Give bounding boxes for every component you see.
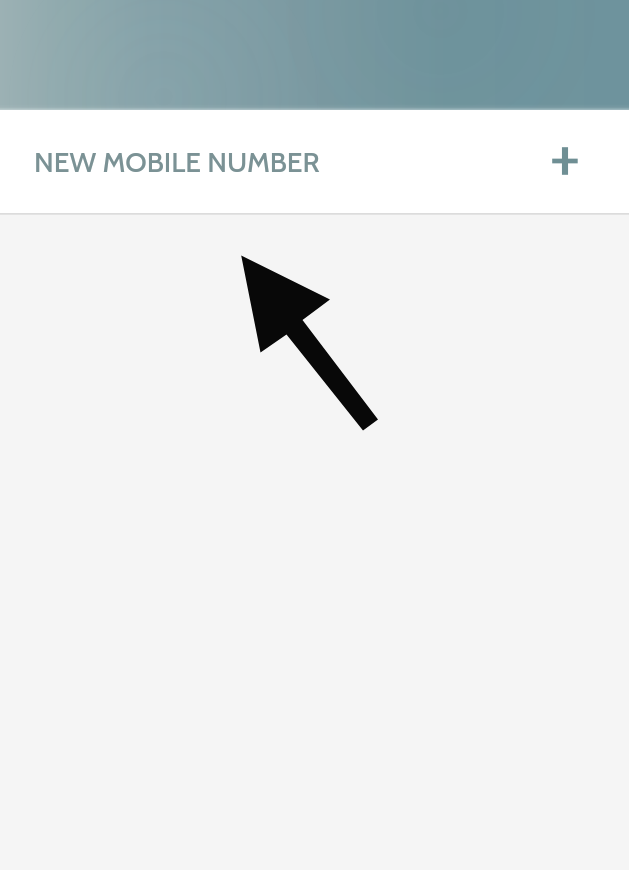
staticText: NEW MOBILE NUMBER bbox=[34, 145, 320, 179]
button[interactable]: Add new mobile number bbox=[529, 127, 601, 199]
